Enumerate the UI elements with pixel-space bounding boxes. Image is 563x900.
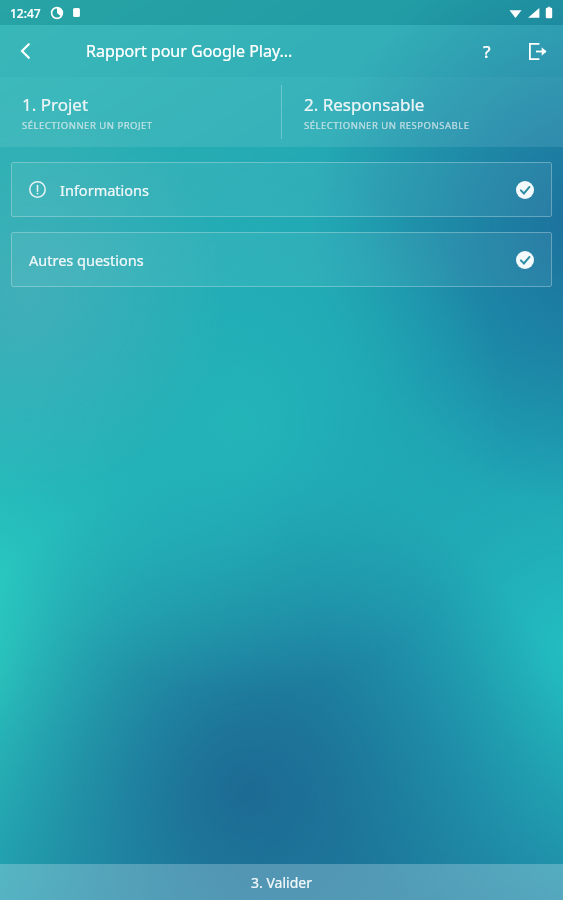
staticText: 12:47 [10,5,41,21]
button[interactable]: Help [463,27,511,75]
button[interactable]: 1. Projet [0,77,281,147]
staticText: SÉLECTIONNER UN PROJET [22,119,153,132]
staticText: Autres questions [29,250,144,270]
button[interactable]: Back [0,25,52,77]
staticText: ? [483,40,491,63]
staticText: Rapport pour Google Play... [86,40,293,62]
staticText: 3. Valider [251,873,312,892]
button[interactable]: Log out [511,25,563,77]
button[interactable]: 2. Responsable [282,77,563,147]
button[interactable]: 3. Valider [0,864,563,900]
staticText: 1. Projet [22,93,89,116]
staticText: SÉLECTIONNER UN RESPONSABLE [304,119,470,132]
staticText: Informations [60,180,149,200]
button[interactable]: Informations [11,162,552,217]
staticText: 2. Responsable [304,93,425,116]
button[interactable]: Autres questions [11,232,552,287]
